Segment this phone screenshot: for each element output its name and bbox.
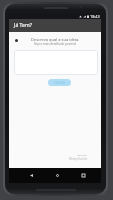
staticText: Wesley Fuchter — [69, 157, 88, 161]
button[interactable]: ENVIAR — [48, 79, 71, 86]
button[interactable] — [14, 50, 98, 75]
staticText: 18:43 — [90, 14, 100, 19]
button[interactable]: Home — [50, 168, 64, 183]
staticText: Já Tem? — [14, 22, 32, 29]
staticText: Descreva qual a sua ideia. — [31, 37, 80, 42]
staticText: ENVIAR — [54, 81, 66, 85]
staticText: Seja o mais detalhado possível — [34, 42, 77, 46]
button[interactable]: Back — [24, 168, 38, 183]
button[interactable]: Recent apps — [76, 168, 90, 183]
staticText: Feito por — [77, 153, 88, 156]
